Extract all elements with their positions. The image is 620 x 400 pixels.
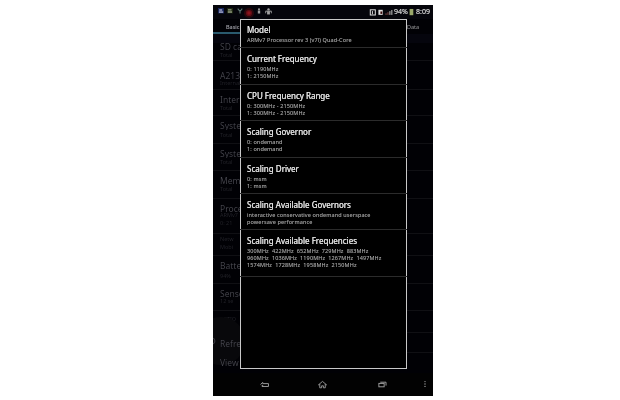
button[interactable]: System xyxy=(220,120,253,130)
staticText: Scaling Available Governors xyxy=(247,199,351,210)
staticText: Total xyxy=(220,104,233,111)
button[interactable]: Home xyxy=(315,377,329,391)
staticText: A213MB xyxy=(220,70,253,80)
staticText: Scaling Available Frequencies xyxy=(247,235,358,246)
staticText: System xyxy=(220,120,249,130)
button[interactable]: Internal xyxy=(220,94,253,104)
staticText: Scaling Driver xyxy=(247,163,299,174)
button[interactable]: More options xyxy=(419,378,431,390)
staticText: Total xyxy=(220,51,233,58)
staticText: 1: 2150MHz xyxy=(247,72,279,79)
button[interactable]: CPU Frequency Range xyxy=(240,85,407,121)
button[interactable]: SD card xyxy=(220,41,253,51)
staticText: 94% xyxy=(220,272,231,279)
button[interactable]: Scaling Available Frequencies xyxy=(240,230,407,277)
button[interactable]: Processor xyxy=(220,203,253,213)
staticText: Internal xyxy=(220,94,252,104)
staticText: CPU Frequency Range xyxy=(247,90,330,101)
staticText: interactive conservative ondemand usersp… xyxy=(247,211,371,218)
staticText: Scaling Governor xyxy=(247,126,312,137)
button[interactable]: Refre xyxy=(220,338,253,348)
button[interactable]: A213MB xyxy=(220,70,253,80)
staticText: 300MHz 422MHz 652MHz 729MHz 883MHz xyxy=(247,247,369,254)
staticText: 0: 300MHz - 2150MHz xyxy=(247,102,306,109)
button[interactable]: Memory xyxy=(220,175,253,185)
staticText: ARMv7 Processor rev 3 (v7l) Quad-Core xyxy=(247,36,352,43)
staticText: 0: 21 xyxy=(220,219,233,226)
staticText: ARMv7 xyxy=(220,211,238,218)
staticText: 0: ondemand xyxy=(247,138,283,145)
staticText: Memory xyxy=(220,175,253,185)
staticText: SD card xyxy=(220,41,251,51)
staticText: Netw xyxy=(220,235,234,242)
button[interactable]: Scaling Governor xyxy=(240,121,407,158)
button[interactable]: Recent apps xyxy=(375,377,389,391)
staticText: 94% xyxy=(394,7,408,17)
staticText: 0: msm xyxy=(247,175,267,182)
staticText: Refre xyxy=(220,338,242,348)
button[interactable]: Back xyxy=(257,377,271,391)
staticText: Total xyxy=(220,185,233,192)
button[interactable]: Basic xyxy=(213,19,253,33)
staticText: 1574MHz 1728MHz 1958MHz 2150MHz xyxy=(247,261,357,268)
button[interactable]: Current Frequency xyxy=(240,48,407,85)
staticText: Sensors xyxy=(220,288,252,298)
staticText: View xyxy=(220,357,239,367)
staticText: powersave performance xyxy=(247,218,313,225)
staticText: Current Frequency xyxy=(247,53,317,64)
staticText: Processor xyxy=(220,203,253,213)
button[interactable]: View xyxy=(220,357,253,367)
staticText: 960MHz 1036MHz 1190MHz 1267MHz 1497MHz xyxy=(247,254,382,261)
button[interactable]: System xyxy=(220,148,253,158)
button[interactable]: Sensors xyxy=(220,288,253,298)
staticText: 12 se xyxy=(220,297,234,304)
staticText: 8:09 xyxy=(416,7,430,17)
staticText: Battery xyxy=(220,260,250,270)
staticText: Data xyxy=(407,23,420,30)
staticText: System xyxy=(220,148,249,158)
button[interactable]: System xyxy=(283,19,343,33)
staticText: 1: 300MHz - 2150MHz xyxy=(247,109,306,116)
staticText: 1: msm xyxy=(247,182,267,189)
staticText: Total xyxy=(220,158,233,165)
button[interactable]: Data xyxy=(393,19,433,33)
button[interactable]: Battery xyxy=(220,260,253,270)
staticText: 1: ondemand xyxy=(247,145,283,152)
button[interactable]: Scaling Driver xyxy=(240,158,407,194)
staticText: 0: 1190MHz xyxy=(247,65,279,72)
staticText: Total xyxy=(220,131,233,138)
staticText: Mobi xyxy=(220,243,234,250)
staticText: Internal xyxy=(220,79,241,86)
button[interactable]: Model xyxy=(240,19,407,48)
button[interactable]: Scaling Available Governors xyxy=(240,194,407,230)
staticText: Model xyxy=(247,24,271,35)
staticText: Basic xyxy=(226,23,240,30)
staticText: ACTIO xyxy=(220,315,237,322)
